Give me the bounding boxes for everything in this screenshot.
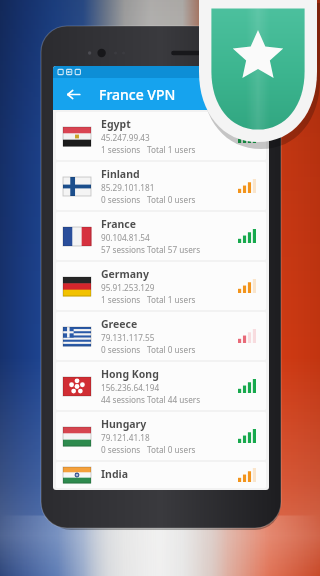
staticText: 85.29.101.181 <box>101 182 155 193</box>
button[interactable]: Egypt <box>56 112 266 160</box>
staticText: 44 sessions <box>101 394 147 405</box>
staticText: 45.247.99.43 <box>101 132 150 143</box>
staticText: 79.121.41.18 <box>101 432 150 443</box>
staticText: 0 sessions <box>101 444 147 455</box>
staticText: France <box>101 217 137 231</box>
staticText: Total 0 users <box>147 444 196 455</box>
staticText: 57 sessions <box>101 244 147 255</box>
button[interactable]: Hong Kong <box>56 362 266 410</box>
button[interactable]: Greece <box>56 312 266 360</box>
staticText: Total 1 users <box>147 294 196 305</box>
button[interactable]: Back <box>61 82 85 106</box>
staticText: 0 sessions <box>101 344 147 355</box>
staticText: 0 sessions <box>101 194 147 205</box>
staticText: Total 44 users <box>147 394 201 405</box>
staticText: 1 sessions <box>101 144 147 155</box>
button[interactable]: India <box>56 462 266 488</box>
staticText: Total 57 users <box>147 244 201 255</box>
button[interactable]: Hungary <box>56 412 266 460</box>
staticText: 95.91.253.129 <box>101 282 155 293</box>
button[interactable]: Germany <box>56 262 266 310</box>
staticText: 156.236.64.194 <box>101 382 160 393</box>
staticText: Hungary <box>101 417 147 431</box>
staticText: France VPN <box>99 85 176 104</box>
button[interactable]: Finland <box>56 162 266 210</box>
staticText: Total 0 users <box>147 194 196 205</box>
staticText: India <box>101 467 128 481</box>
staticText: Total 1 users <box>147 144 196 155</box>
staticText: Finland <box>101 167 140 181</box>
staticText: 1 sessions <box>101 294 147 305</box>
staticText: Greece <box>101 317 138 331</box>
staticText: Total 0 users <box>147 344 196 355</box>
staticText: Egypt <box>101 117 131 131</box>
staticText: 79.131.117.55 <box>101 332 155 343</box>
staticText: 90.104.81.54 <box>101 232 150 243</box>
staticText: Hong Kong <box>101 367 159 381</box>
staticText: Germany <box>101 267 149 281</box>
button[interactable]: France <box>56 212 266 260</box>
